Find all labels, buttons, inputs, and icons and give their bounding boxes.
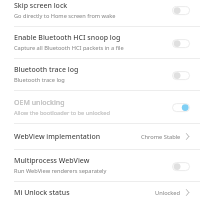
button[interactable]: Toggle, off [172,161,190,171]
button[interactable]: Skip screen lock [0,0,200,26]
staticText: Bluetooth trace log [14,65,79,75]
staticText: Allow the bootloader to be unlocked [14,109,110,117]
staticText: Enable Bluetooth HCI snoop log [14,33,121,43]
button[interactable]: Toggle, off [172,5,190,15]
staticText: Run WebView renderers separately [14,167,107,175]
staticText: Bluetooth trace log [14,76,65,84]
staticText: Capture all Bluetooth HCI packets in a f… [14,44,124,52]
button[interactable]: Toggle, off [172,70,190,80]
button[interactable]: Mi Unlock status [0,182,200,200]
button[interactable]: Toggle, on [172,102,190,112]
staticText: Unlocked [155,189,181,197]
button[interactable]: Multiprocess WebView [0,150,200,181]
button[interactable]: WebView implementation [0,124,200,149]
staticText: Skip screen lock [14,1,68,11]
staticText: OEM unlocking [14,98,65,108]
staticText: Chrome Stable [141,133,181,141]
button[interactable]: Bluetooth trace log [0,59,200,90]
button[interactable]: Enable Bluetooth HCI snoop log [0,27,200,58]
staticText: Go directly to Home screen from wake [14,12,116,20]
button[interactable]: Toggle, off [172,38,190,48]
button[interactable]: OEM unlocking [0,91,200,123]
staticText: Mi Unlock status [14,188,155,198]
staticText: Multiprocess WebView [14,156,90,166]
staticText: WebView implementation [14,132,141,142]
